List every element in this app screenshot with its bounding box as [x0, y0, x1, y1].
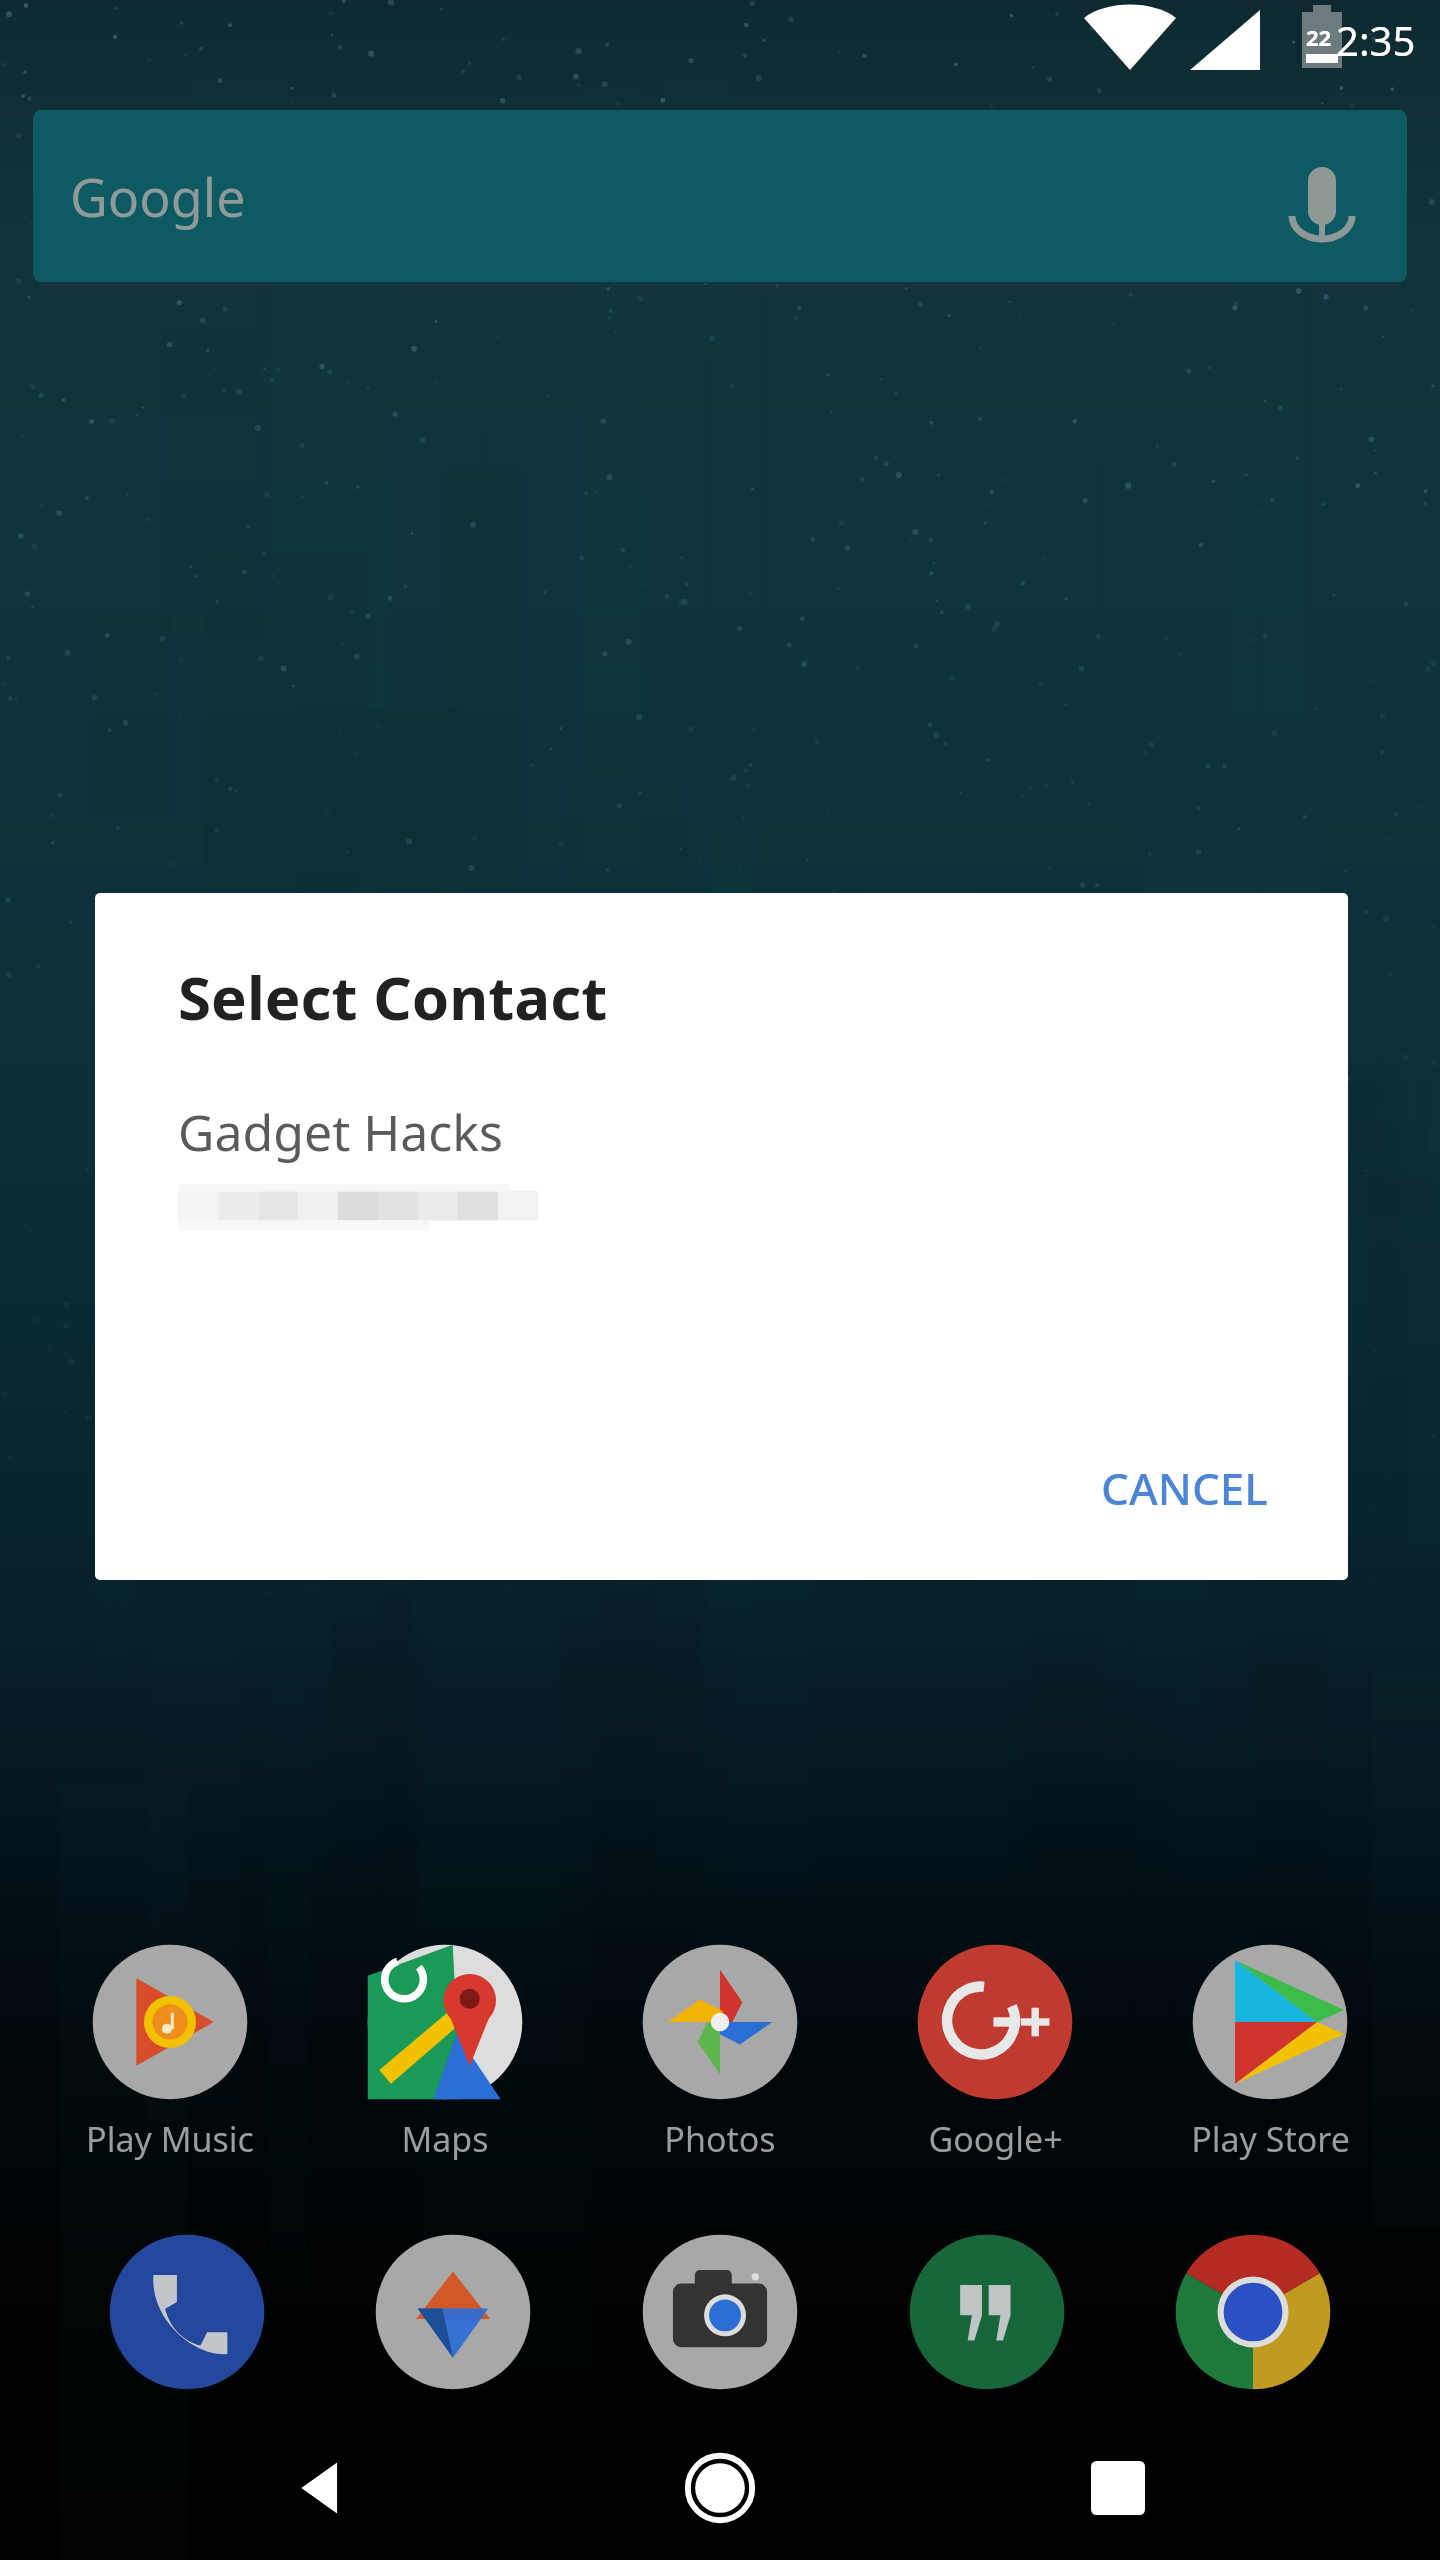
button[interactable]: CANCEL — [1079, 1444, 1290, 1532]
staticText: Play Music — [86, 2116, 254, 2162]
button[interactable]: Hangouts — [897, 2222, 1077, 2402]
staticText: Select Contact — [178, 956, 608, 1038]
button[interactable]: Gadget Hacks — [178, 1098, 1348, 1232]
staticText: Photos — [664, 2116, 776, 2162]
button[interactable]: Photos — [605, 1938, 835, 2162]
staticText: Gadget Hacks — [178, 1098, 503, 1166]
button[interactable]: Muzei — [363, 2222, 543, 2402]
staticText: 22 — [1306, 22, 1332, 52]
staticText: Maps — [401, 2116, 489, 2162]
button[interactable]: Google+ — [880, 1938, 1110, 2162]
button[interactable]: Back — [248, 2415, 398, 2560]
button[interactable]: Phone — [97, 2222, 277, 2402]
button[interactable]: Play Store — [1155, 1938, 1385, 2162]
button[interactable]: Voice search — [1277, 151, 1367, 241]
button[interactable]: Chrome — [1163, 2222, 1343, 2402]
button[interactable]: Google — [33, 110, 1407, 282]
button[interactable]: Recents — [1043, 2415, 1193, 2560]
staticText: Google — [70, 161, 246, 232]
button[interactable]: Home — [645, 2415, 795, 2560]
button[interactable]: Play Music — [55, 1938, 285, 2162]
button[interactable]: Camera — [630, 2222, 810, 2402]
staticText: 2:35 — [1336, 13, 1416, 67]
staticText: Google+ — [928, 2116, 1063, 2162]
staticText: CANCEL — [1101, 1458, 1268, 1518]
button[interactable]: Maps — [330, 1938, 560, 2162]
staticText: Play Store — [1191, 2116, 1350, 2162]
